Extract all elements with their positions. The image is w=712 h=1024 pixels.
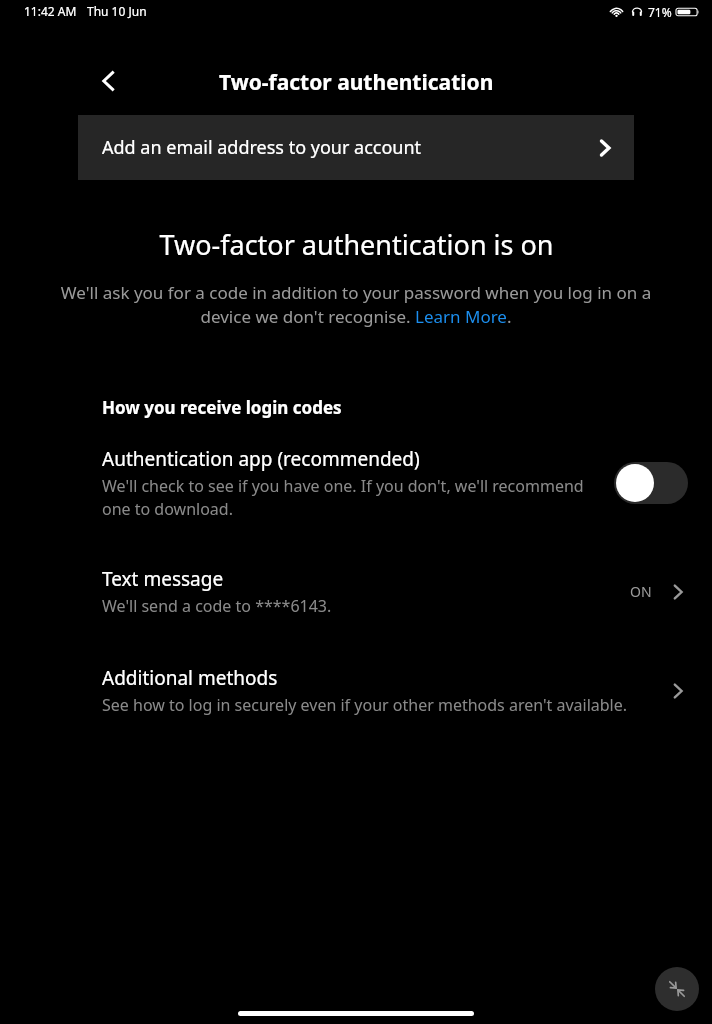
staticText: We'll ask you for a code in addition to … xyxy=(52,281,660,328)
button[interactable]: Authentication app toggle xyxy=(614,462,688,504)
button[interactable]: Add an email address to your account xyxy=(78,115,634,180)
staticText: 71% xyxy=(648,4,672,20)
staticText: Text message xyxy=(102,566,224,592)
button[interactable]: Additional methods xyxy=(0,665,712,716)
staticText: How you receive login codes xyxy=(102,396,342,419)
staticText: We'll send a code to ****6143. xyxy=(102,595,332,617)
staticText: Authentication app (recommended) xyxy=(102,446,420,472)
button[interactable]: Collapse xyxy=(655,967,699,1011)
button[interactable]: Back xyxy=(86,58,132,104)
staticText: ON xyxy=(630,582,652,601)
staticText: Add an email address to your account xyxy=(102,135,422,160)
staticText: Additional methods xyxy=(102,665,278,691)
staticText: Two-factor authentication xyxy=(219,68,494,97)
staticText: 11:42 AM xyxy=(24,3,77,19)
staticText: See how to log in securely even if your … xyxy=(102,694,628,716)
button[interactable]: Text message xyxy=(0,566,712,617)
staticText: Thu 10 Jun xyxy=(87,3,147,19)
staticText: Two-factor authentication is on xyxy=(159,226,554,263)
button[interactable]: Authentication app (recommended) xyxy=(0,446,712,520)
staticText: We'll check to see if you have one. If y… xyxy=(102,475,606,520)
